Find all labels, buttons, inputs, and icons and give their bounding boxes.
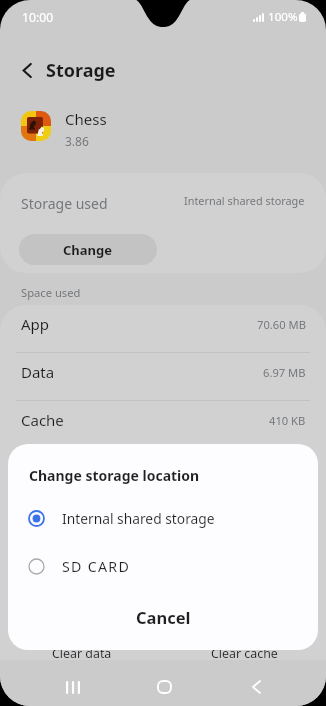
staticText: Change storage location	[29, 466, 200, 485]
staticText: App	[21, 314, 50, 334]
button[interactable]: Recent apps	[57, 671, 89, 703]
staticText: Clear cache	[211, 645, 278, 662]
staticText: Cache	[21, 410, 64, 430]
staticText: 3.86	[65, 133, 89, 149]
button[interactable]: SD CARD	[8, 543, 318, 589]
staticText: 100%	[268, 9, 298, 25]
button[interactable]: Home	[148, 671, 180, 703]
staticText: Space used	[21, 285, 81, 300]
button[interactable]: Internal shared storage	[8, 495, 318, 541]
button[interactable]: Back	[13, 56, 41, 84]
button[interactable]: Change	[19, 234, 157, 265]
staticText: SD CARD	[62, 557, 131, 576]
button[interactable]: Clear cache	[163, 645, 326, 695]
staticText: 6.97 MB	[263, 365, 306, 380]
staticText: 70.60 MB	[257, 317, 306, 332]
button[interactable]: Cancel	[8, 596, 318, 638]
staticText: Data	[21, 362, 55, 382]
staticText: Chess	[65, 109, 107, 129]
button[interactable]: App	[0, 305, 326, 352]
staticText: Internal shared storage	[62, 509, 215, 528]
staticText: Change	[63, 241, 113, 259]
button[interactable]: Back	[240, 671, 272, 703]
staticText: Storage used	[21, 194, 108, 213]
button[interactable]: Cache	[0, 401, 326, 448]
staticText: 10:00	[22, 9, 54, 26]
staticText: Storage	[46, 58, 116, 83]
staticText: 410 KB	[269, 413, 306, 428]
button[interactable]: Clear data	[0, 645, 163, 695]
staticText: Clear data	[52, 645, 112, 662]
staticText: Cancel	[136, 606, 191, 628]
button[interactable]: Data	[0, 353, 326, 400]
staticText: Internal shared storage	[184, 193, 305, 208]
